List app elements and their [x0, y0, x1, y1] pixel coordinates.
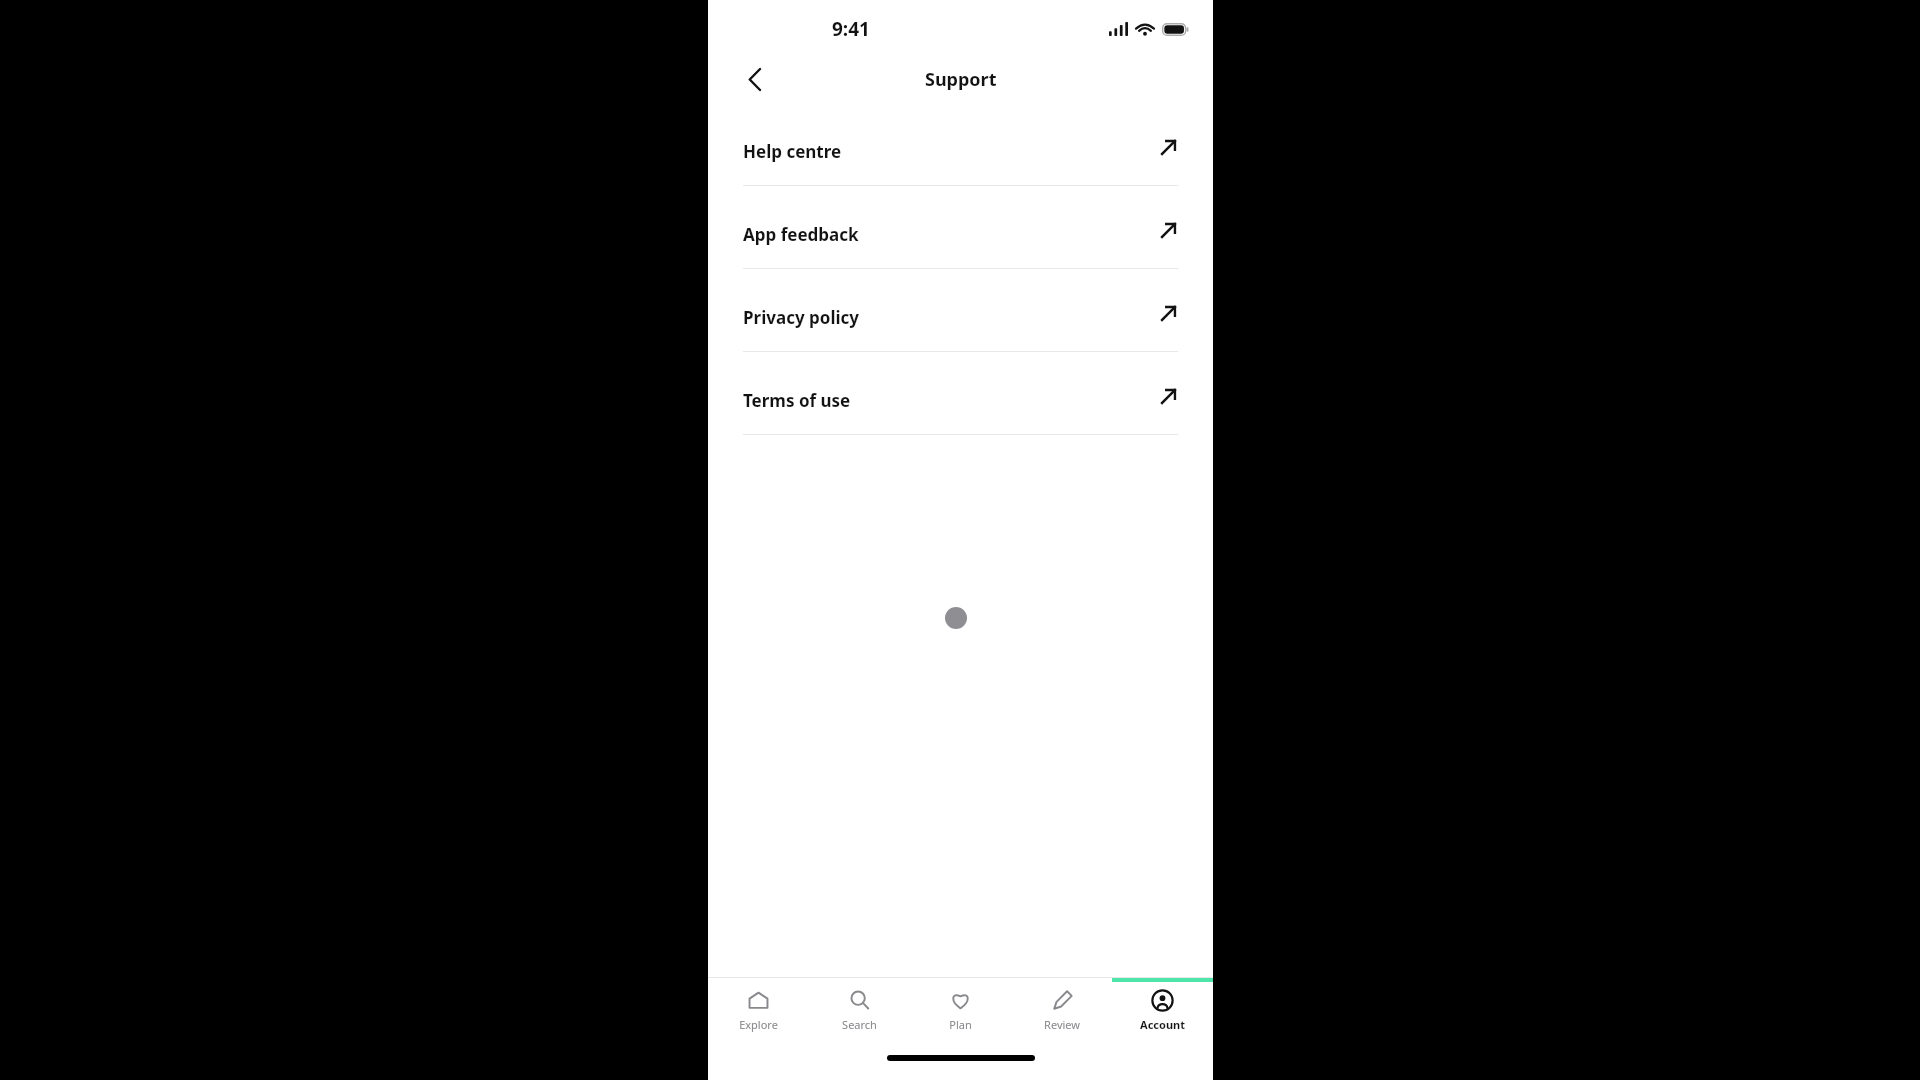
- staticText: Plan: [949, 1017, 972, 1032]
- staticText: Review: [1044, 1017, 1080, 1032]
- staticText: Privacy policy: [743, 306, 860, 329]
- staticText: Help centre: [743, 140, 842, 163]
- button[interactable]: Terms of use: [708, 366, 1213, 449]
- button[interactable]: Explore: [708, 978, 809, 1040]
- button[interactable]: Plan: [910, 978, 1011, 1040]
- button[interactable]: App feedback: [708, 200, 1213, 283]
- staticText: Account: [1140, 1017, 1185, 1032]
- button[interactable]: Search: [809, 978, 910, 1040]
- button[interactable]: Account: [1112, 978, 1213, 1040]
- staticText: Support: [925, 67, 997, 92]
- button[interactable]: Help centre: [708, 117, 1213, 200]
- staticText: 9:41: [832, 16, 870, 42]
- staticText: Search: [842, 1017, 877, 1032]
- staticText: Explore: [739, 1017, 778, 1032]
- button[interactable]: Privacy policy: [708, 283, 1213, 366]
- staticText: Terms of use: [743, 389, 851, 412]
- button[interactable]: Review: [1011, 978, 1112, 1040]
- staticText: App feedback: [743, 223, 859, 246]
- button[interactable]: Back: [738, 62, 772, 96]
